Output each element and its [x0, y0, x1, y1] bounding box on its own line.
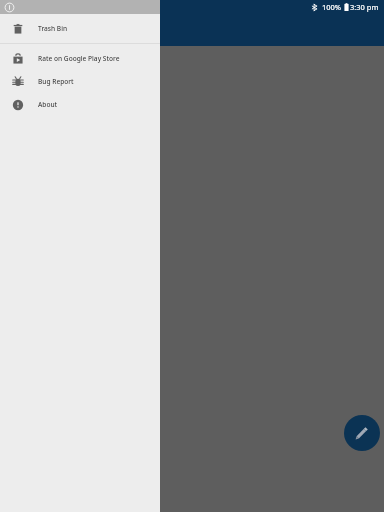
staticText: Bug Report	[38, 77, 74, 86]
button[interactable]: About	[0, 93, 160, 116]
staticText: 3:30 pm	[350, 2, 379, 12]
staticText: 100%	[322, 2, 342, 12]
button[interactable]: Trash Bin	[0, 17, 160, 40]
staticText: Rate on Google Play Store	[38, 54, 120, 63]
staticText: About	[38, 100, 58, 109]
button[interactable]: Compose new note	[344, 415, 380, 451]
button[interactable]: Bug Report	[0, 70, 160, 93]
button[interactable]: Rate on Google Play Store	[0, 47, 160, 70]
staticText: Trash Bin	[38, 24, 68, 33]
